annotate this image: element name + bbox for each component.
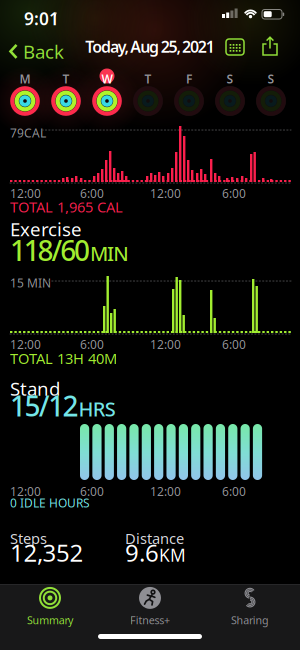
button[interactable]: Summary xyxy=(0,0,100,44)
staticText: M xyxy=(19,71,30,87)
staticText: TOTAL 13H 40M xyxy=(10,348,117,368)
staticText: Today, Aug 25, 2021 xyxy=(85,36,215,57)
staticText: Summary xyxy=(27,613,73,627)
staticText: 6:00 xyxy=(80,483,104,499)
staticText: S xyxy=(267,71,274,87)
button[interactable]: F xyxy=(0,0,40,50)
staticText: Fitness+ xyxy=(130,613,170,627)
button[interactable]: Fitness+ xyxy=(0,0,100,44)
staticText: HRS xyxy=(79,395,116,422)
button[interactable]: T xyxy=(0,0,40,50)
button[interactable]: T xyxy=(0,0,40,50)
staticText: 6:00 xyxy=(222,336,246,352)
button[interactable]: M xyxy=(0,0,40,50)
staticText: F xyxy=(186,71,192,87)
button[interactable]: S xyxy=(0,0,40,50)
staticText: W xyxy=(101,71,112,87)
staticText: S xyxy=(226,71,233,87)
staticText: KM xyxy=(159,543,186,566)
staticText: Exercise xyxy=(10,216,82,241)
button[interactable]: S xyxy=(0,0,40,50)
staticText: 12:00 xyxy=(10,483,41,499)
staticText: Sharing xyxy=(231,613,269,627)
button[interactable]: Sharing xyxy=(0,0,100,44)
staticText: 6:00 xyxy=(222,185,246,201)
staticText: Distance xyxy=(125,528,184,548)
staticText: Back xyxy=(23,39,64,64)
staticText: 12:00 xyxy=(150,185,181,201)
staticText: 12:00 xyxy=(10,336,41,352)
staticText: Stand xyxy=(10,376,60,401)
staticText: 12:00 xyxy=(150,483,181,499)
staticText: 15/12 xyxy=(10,387,79,424)
staticText: 15 MIN xyxy=(10,275,51,291)
staticText: 12,352 xyxy=(10,536,83,568)
staticText: 0 IDLE HOURS xyxy=(10,495,90,511)
staticText: Steps xyxy=(10,528,47,548)
staticText: 6:00 xyxy=(80,185,104,201)
staticText: T xyxy=(62,71,69,87)
staticText: 9.6 xyxy=(125,536,159,568)
staticText: MIN xyxy=(90,240,129,266)
staticText: 9:01 xyxy=(24,7,59,30)
staticText: 6:00 xyxy=(222,483,246,499)
staticText: 12:00 xyxy=(150,336,181,352)
button[interactable]: Back xyxy=(0,0,55,25)
staticText: 12:00 xyxy=(10,185,41,201)
staticText: 79CAL xyxy=(10,125,46,141)
staticText: 118/60 xyxy=(10,231,90,269)
staticText: T xyxy=(144,71,151,87)
staticText: 6:00 xyxy=(80,336,104,352)
staticText: TOTAL 1,965 CAL xyxy=(10,197,123,216)
button[interactable]: W xyxy=(0,0,40,50)
